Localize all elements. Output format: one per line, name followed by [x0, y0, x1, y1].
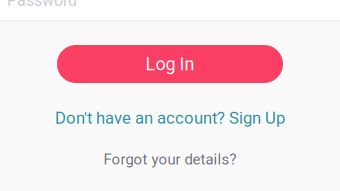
button[interactable]: Password — [0, 0, 340, 22]
staticText: Don't have an account? Sign Up — [55, 108, 285, 128]
staticText: Forgot your details? — [103, 151, 236, 168]
staticText: Password — [7, 0, 77, 10]
button[interactable]: Don't have an account? Sign Up — [54, 110, 286, 126]
button[interactable]: Log In — [57, 45, 283, 83]
button[interactable]: Forgot your details? — [103, 152, 237, 167]
staticText: Log In — [145, 53, 194, 75]
